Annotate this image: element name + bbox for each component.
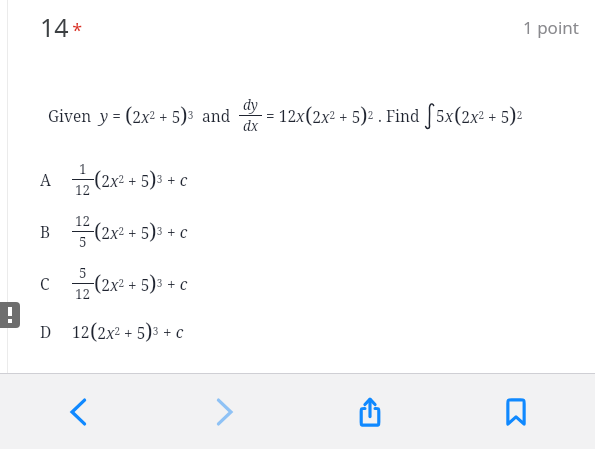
staticText: 5x xyxy=(436,105,454,126)
staticText: + c xyxy=(159,321,184,342)
staticText: 5 xyxy=(79,233,87,251)
staticText: D xyxy=(40,321,72,342)
staticText: 1 point xyxy=(523,16,579,39)
staticText: = 12x xyxy=(262,105,305,126)
staticText: (2x2 + 5)3 xyxy=(90,317,159,346)
staticText: (2x2 + 5)3 xyxy=(125,101,194,130)
staticText: 1 xyxy=(79,160,87,178)
staticText: dx xyxy=(243,117,259,135)
staticText: (2x2 + 5)3 xyxy=(94,269,163,298)
staticText: and xyxy=(194,105,239,126)
staticText: (2x2 + 5)3 xyxy=(94,165,163,194)
staticText: (2x2 + 5)3 xyxy=(94,217,163,246)
button[interactable]: Share xyxy=(297,374,443,449)
staticText: 5 xyxy=(79,264,87,282)
button[interactable]: D xyxy=(0,308,595,354)
staticText: dy xyxy=(243,96,258,114)
staticText: Given xyxy=(48,105,100,126)
staticText: (2x2 + 5)2 xyxy=(305,101,374,130)
staticText: y = xyxy=(100,105,125,126)
button[interactable]: C xyxy=(0,260,595,306)
staticText: + c xyxy=(163,221,188,242)
button[interactable]: Warning xyxy=(0,302,20,328)
staticText: 12 xyxy=(75,181,91,199)
button[interactable]: B xyxy=(0,208,595,254)
staticText: + c xyxy=(163,273,188,294)
staticText: 12 xyxy=(75,212,91,230)
button[interactable]: Bookmark xyxy=(443,374,589,449)
staticText: B xyxy=(40,221,72,242)
staticText: 14 * xyxy=(40,10,83,44)
staticText: . Find xyxy=(374,105,424,126)
staticText: C xyxy=(40,273,72,294)
staticText: 12 xyxy=(72,321,90,342)
staticText: A xyxy=(40,169,72,190)
button[interactable]: Back xyxy=(6,374,151,449)
button[interactable]: A xyxy=(0,156,595,202)
button[interactable]: Forward xyxy=(151,374,297,449)
staticText: + c xyxy=(163,169,188,190)
staticText: (2x2 + 5)2 xyxy=(454,101,523,130)
staticText: 12 xyxy=(75,285,91,303)
